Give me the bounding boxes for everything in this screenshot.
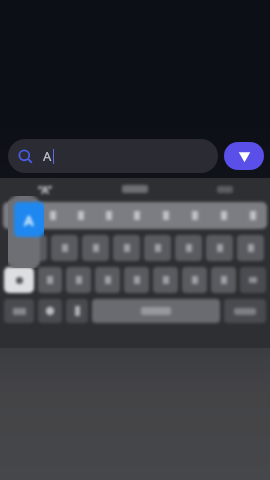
button[interactable] [206, 235, 233, 261]
button[interactable] [20, 235, 47, 261]
button[interactable] [38, 267, 62, 293]
button[interactable] [180, 178, 270, 200]
button[interactable]: A [8, 139, 218, 173]
button[interactable] [95, 267, 120, 293]
button[interactable] [51, 235, 78, 261]
button[interactable] [90, 178, 180, 200]
button[interactable]: Send [224, 142, 264, 170]
button[interactable] [124, 267, 149, 293]
staticText: “A” [38, 182, 52, 197]
button[interactable]: Shift [4, 267, 34, 293]
staticText: A [43, 147, 52, 165]
button[interactable] [113, 235, 140, 261]
button[interactable]: Emoji [38, 299, 62, 323]
button[interactable] [66, 299, 88, 323]
button[interactable] [153, 267, 178, 293]
button[interactable] [82, 235, 109, 261]
staticText: A [24, 210, 34, 230]
button[interactable] [144, 235, 171, 261]
button[interactable]: “A” [0, 178, 90, 200]
button[interactable] [175, 235, 202, 261]
button[interactable] [237, 235, 264, 261]
button[interactable] [66, 267, 91, 293]
button[interactable]: Space [92, 299, 220, 323]
button[interactable]: Backspace [240, 267, 266, 293]
button[interactable] [182, 267, 207, 293]
button[interactable]: Enter [224, 299, 266, 323]
button[interactable] [211, 267, 236, 293]
button[interactable]: Symbols [4, 299, 34, 323]
